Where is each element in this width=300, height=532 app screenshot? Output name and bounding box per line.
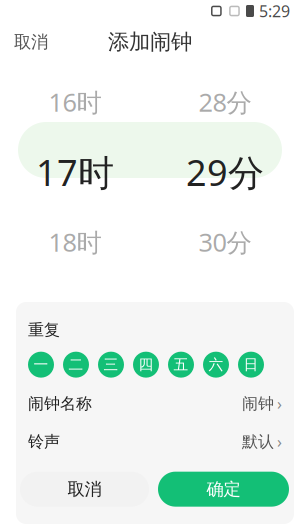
staticText: 确定 <box>206 478 240 500</box>
staticText: 5:29 <box>259 0 290 22</box>
staticText: 六 <box>208 356 223 374</box>
button[interactable]: 闹钟名称 <box>16 394 294 414</box>
button[interactable]: 四 <box>133 352 159 378</box>
staticText: 添加闹钟 <box>108 29 192 55</box>
staticText: 铃声 <box>28 432 60 451</box>
button[interactable]: 二 <box>63 352 89 378</box>
button[interactable]: 六 <box>203 352 229 378</box>
staticText: 日 <box>243 356 258 374</box>
staticText: 四 <box>138 356 153 374</box>
button[interactable]: 确定 <box>158 472 289 507</box>
button[interactable]: 取消 <box>0 23 62 61</box>
button[interactable]: 五 <box>168 352 194 378</box>
staticText: › <box>277 393 282 414</box>
button[interactable]: 取消 <box>20 472 149 507</box>
button[interactable]: 一 <box>28 352 54 378</box>
staticText: 默认 <box>242 432 274 451</box>
staticText: 五 <box>173 356 188 374</box>
staticText: 30分 <box>198 225 251 259</box>
staticText: 闹钟名称 <box>28 394 92 413</box>
staticText: 28分 <box>198 85 251 119</box>
button[interactable]: 铃声 <box>16 432 294 452</box>
staticText: 17时 <box>36 148 114 196</box>
staticText: 16时 <box>48 85 101 119</box>
staticText: 一 <box>33 356 48 374</box>
staticText: 三 <box>103 356 118 374</box>
button[interactable]: 日 <box>238 352 264 378</box>
staticText: 18时 <box>48 225 101 259</box>
staticText: 闹钟 <box>242 394 274 413</box>
staticText: 取消 <box>67 478 101 500</box>
staticText: › <box>277 431 282 452</box>
staticText: 二 <box>68 356 83 374</box>
staticText: 取消 <box>14 31 48 53</box>
staticText: 29分 <box>186 148 264 196</box>
staticText: 重复 <box>28 320 60 340</box>
button[interactable]: 三 <box>98 352 124 378</box>
